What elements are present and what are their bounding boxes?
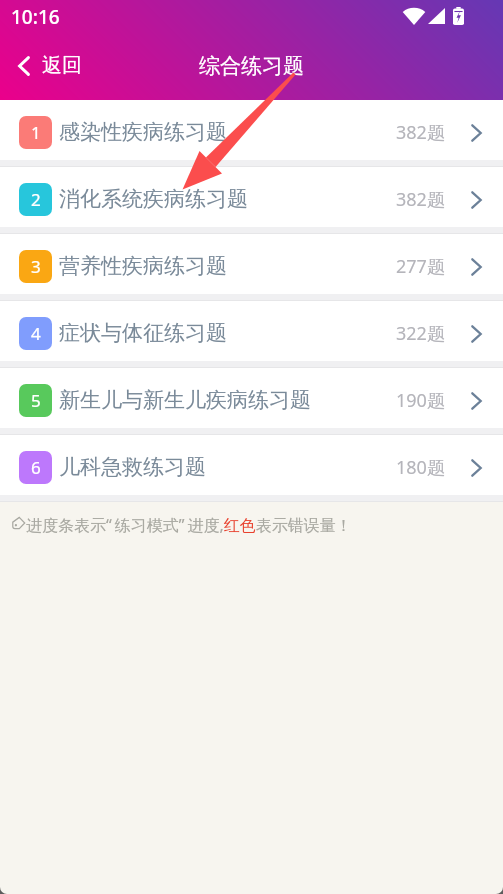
staticText: 症状与体征练习题 <box>59 320 227 346</box>
staticText: 4 <box>31 322 41 345</box>
staticText: 进度条表示“练习模式”进度,红色表示错误量！ <box>26 514 352 536</box>
staticText: 10:16 <box>11 4 60 30</box>
button[interactable]: 6 <box>0 435 503 495</box>
button[interactable]: 4 <box>0 301 503 361</box>
staticText: 382题 <box>396 120 445 145</box>
staticText: 6 <box>31 456 41 479</box>
staticText: 3 <box>31 255 41 278</box>
staticText: 322题 <box>396 321 445 346</box>
staticText: 5 <box>31 389 41 412</box>
staticText: 消化系统疾病练习题 <box>59 186 248 212</box>
staticText: 营养性疾病练习题 <box>59 253 227 279</box>
staticText: 1 <box>31 121 41 144</box>
staticText: 综合练习题 <box>199 53 304 79</box>
button[interactable]: 5 <box>0 368 503 428</box>
button[interactable]: 2 <box>0 167 503 227</box>
staticText: 180题 <box>396 455 445 480</box>
staticText: 2 <box>31 188 41 211</box>
staticText: 新生儿与新生儿疾病练习题 <box>59 387 311 413</box>
button[interactable]: 1 <box>0 100 503 160</box>
button[interactable]: 返回 <box>10 49 90 82</box>
button[interactable]: 3 <box>0 234 503 294</box>
staticText: 儿科急救练习题 <box>59 454 206 480</box>
staticText: 返回 <box>42 53 82 78</box>
staticText: 感染性疾病练习题 <box>59 119 227 145</box>
staticText: 277题 <box>396 254 445 279</box>
staticText: 190题 <box>396 388 445 413</box>
staticText: 382题 <box>396 187 445 212</box>
